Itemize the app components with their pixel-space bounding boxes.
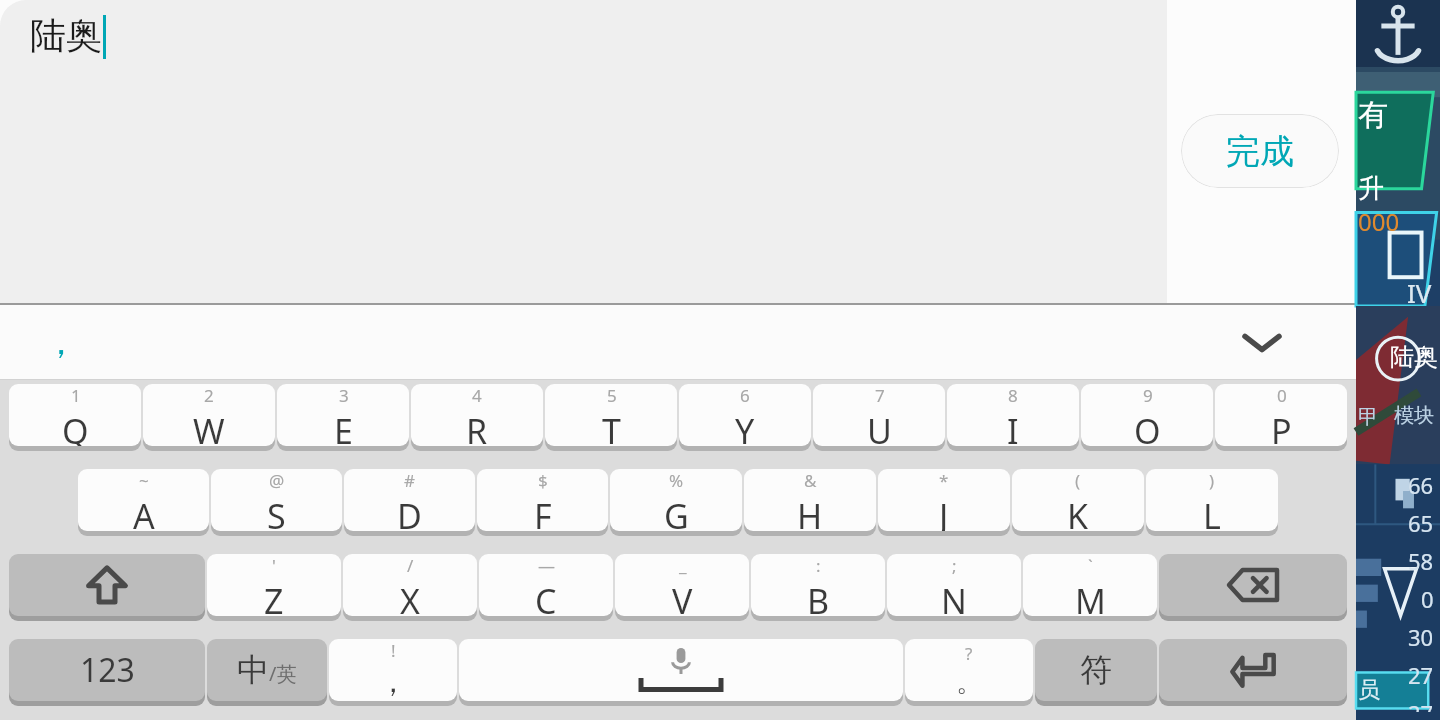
button[interactable]: ， <box>26 305 96 379</box>
staticText: S <box>267 493 286 531</box>
staticText: X <box>400 578 420 616</box>
staticText: Y <box>735 408 755 446</box>
staticText: / <box>407 554 414 577</box>
staticText: 升 <box>1358 172 1384 205</box>
button[interactable]: ; <box>887 554 1021 621</box>
staticText: T <box>602 408 621 446</box>
button[interactable]: Enter <box>1159 639 1347 706</box>
button[interactable]: Shift <box>9 554 205 621</box>
staticText: V <box>672 578 693 616</box>
staticText: Z <box>264 578 284 616</box>
staticText: 8 <box>1008 384 1018 407</box>
button[interactable]: 5 <box>545 384 677 451</box>
staticText: 27 <box>1408 660 1434 690</box>
staticText: N <box>941 578 967 616</box>
staticText: 3 <box>339 384 349 407</box>
staticText: _ <box>679 554 687 577</box>
button[interactable]: : <box>751 554 885 621</box>
staticText: Q <box>62 408 89 446</box>
staticText: 6 <box>740 384 750 407</box>
staticText: 符 <box>1080 650 1112 690</box>
staticText: 27 <box>1408 698 1434 712</box>
button[interactable]: 8 <box>947 384 1079 451</box>
button[interactable]: 3 <box>277 384 409 451</box>
button[interactable]: 中 <box>207 639 327 706</box>
button[interactable]: 2 <box>143 384 275 451</box>
staticText: ， <box>378 663 408 701</box>
staticText: 完成 <box>1226 130 1294 173</box>
staticText: C <box>535 578 557 616</box>
button[interactable]: 9 <box>1081 384 1213 451</box>
staticText: L <box>1203 493 1221 531</box>
button[interactable]: # <box>344 469 475 536</box>
button[interactable]: _ <box>615 554 749 621</box>
button[interactable]: 完成 <box>1181 114 1339 188</box>
button[interactable]: * <box>878 469 1010 536</box>
staticText: ` <box>1088 554 1093 577</box>
staticText: # <box>404 469 415 492</box>
staticText: G <box>664 493 689 531</box>
button[interactable]: ? <box>905 639 1033 706</box>
button[interactable]: ) <box>1146 469 1278 536</box>
button[interactable]: ' <box>207 554 341 621</box>
button[interactable]: & <box>744 469 876 536</box>
staticText: 7 <box>875 384 885 407</box>
staticText: M <box>1075 578 1106 616</box>
button[interactable]: 陆奥 <box>0 0 1167 303</box>
staticText: ) <box>1209 469 1215 492</box>
staticText: 0 <box>1421 584 1434 614</box>
staticText: W <box>193 408 225 446</box>
button[interactable]: @ <box>211 469 342 536</box>
staticText: 中 <box>237 650 269 690</box>
staticText: 30 <box>1408 622 1434 652</box>
staticText: 陆奥 <box>1390 342 1438 372</box>
staticText: 有 <box>1358 96 1388 134</box>
staticText: 65 <box>1408 508 1434 538</box>
staticText: P <box>1271 408 1292 446</box>
button[interactable]: 4 <box>411 384 543 451</box>
staticText: F <box>534 493 552 531</box>
staticText: ( <box>1075 469 1081 492</box>
staticText: H <box>797 493 823 531</box>
staticText: % <box>669 469 684 492</box>
button[interactable]: Backspace <box>1159 554 1347 621</box>
button[interactable]: 7 <box>813 384 945 451</box>
button[interactable]: 123 <box>9 639 205 706</box>
button[interactable]: ` <box>1023 554 1157 621</box>
staticText: 0 <box>1277 384 1287 407</box>
button[interactable]: Hide keyboard <box>1226 306 1298 378</box>
staticText: : <box>816 554 821 577</box>
staticText: ' <box>272 554 276 577</box>
staticText: 000 <box>1358 205 1400 238</box>
staticText: ， <box>44 321 78 364</box>
staticText: 9 <box>1143 384 1153 407</box>
staticText: B <box>807 578 830 616</box>
staticText: 5 <box>607 384 617 407</box>
staticText: O <box>1134 408 1161 446</box>
button[interactable]: 0 <box>1215 384 1347 451</box>
staticText: E <box>334 408 353 446</box>
staticText: I <box>1007 408 1019 446</box>
button[interactable]: ~ <box>78 469 209 536</box>
button[interactable]: Space <box>459 639 903 706</box>
button[interactable]: ( <box>1012 469 1144 536</box>
staticText: 4 <box>472 384 482 407</box>
staticText: 66 <box>1408 470 1434 500</box>
staticText: R <box>466 408 488 446</box>
staticText: 58 <box>1408 546 1434 576</box>
staticText: 甲 <box>1358 405 1378 430</box>
staticText: & <box>804 469 817 492</box>
staticText: $ <box>538 469 548 492</box>
button[interactable]: 符 <box>1035 639 1157 706</box>
button[interactable]: — <box>479 554 613 621</box>
button[interactable]: ! <box>329 639 457 706</box>
button[interactable]: 6 <box>679 384 811 451</box>
staticText: 1 <box>71 384 81 407</box>
staticText: ! <box>391 639 396 662</box>
button[interactable]: / <box>343 554 477 621</box>
button[interactable]: $ <box>477 469 608 536</box>
staticText: * <box>939 469 949 492</box>
button[interactable]: % <box>610 469 742 536</box>
staticText: A <box>133 493 155 531</box>
button[interactable]: 1 <box>9 384 141 451</box>
